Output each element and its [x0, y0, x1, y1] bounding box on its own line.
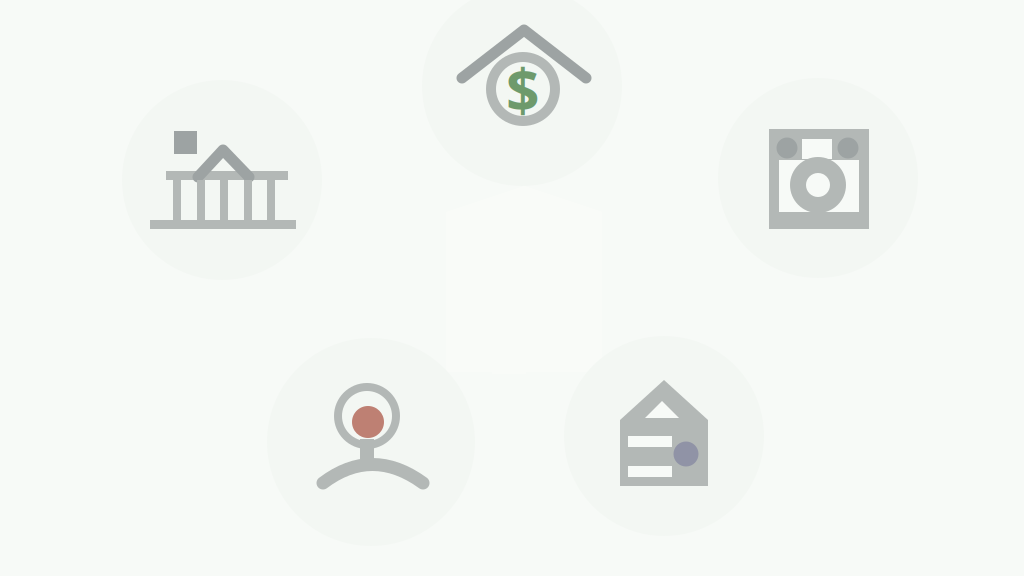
button[interactable]: Property documents — [564, 336, 764, 536]
button[interactable]: Profile — [267, 338, 475, 546]
button[interactable]: Banking — [122, 80, 322, 280]
button[interactable]: Home value — [422, 0, 622, 186]
staticText: $ — [506, 50, 540, 128]
button[interactable]: Photos — [718, 78, 918, 278]
